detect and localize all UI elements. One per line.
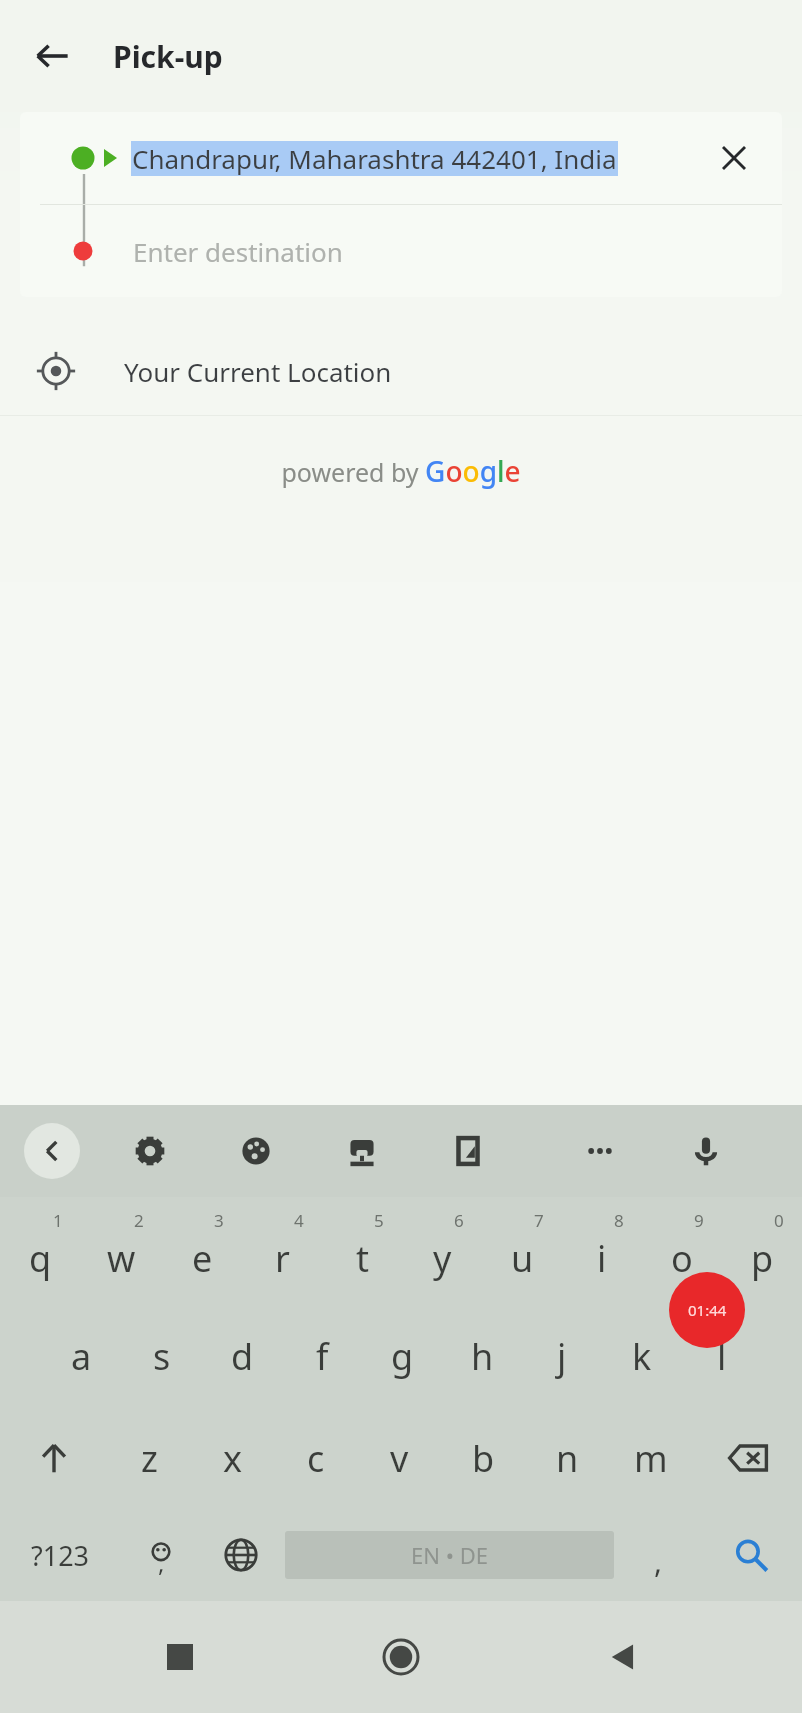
button[interactable]: w [81, 1203, 162, 1305]
button[interactable]: Your Current Location [0, 327, 802, 415]
button[interactable]: ?123 [0, 1509, 121, 1601]
button[interactable]: Theme [228, 1123, 284, 1179]
button[interactable]: k [602, 1305, 682, 1407]
button[interactable]: z [108, 1407, 191, 1509]
staticText: , [654, 1541, 663, 1582]
button[interactable]: Settings [122, 1123, 178, 1179]
button[interactable]: Clipboard [440, 1123, 496, 1179]
staticText: a [71, 1332, 92, 1381]
button[interactable]: s [122, 1305, 202, 1407]
button[interactable]: j [522, 1305, 602, 1407]
button[interactable]: Chandrapur, Maharashtra 442401, India [20, 112, 782, 204]
staticText: o [671, 1234, 693, 1283]
button[interactable]: p [722, 1203, 802, 1305]
staticText: w [107, 1234, 136, 1283]
button[interactable]: Enter destination [20, 205, 782, 297]
button[interactable]: i [562, 1203, 642, 1305]
staticText: d [231, 1332, 254, 1381]
button[interactable]: f [282, 1305, 362, 1407]
button[interactable]: h [442, 1305, 522, 1407]
button[interactable]: Stickers [334, 1123, 390, 1179]
button[interactable]: e [162, 1203, 242, 1305]
button[interactable]: Recents [138, 1615, 222, 1699]
button[interactable]: More options [572, 1123, 628, 1179]
staticText: 0 [774, 1209, 784, 1232]
button[interactable]: g [362, 1305, 442, 1407]
staticText: 6 [454, 1209, 464, 1232]
staticText: q [29, 1234, 52, 1283]
staticText: c [307, 1434, 325, 1483]
button[interactable]: Back [581, 1615, 665, 1699]
staticText: z [141, 1434, 158, 1483]
staticText: 7 [534, 1209, 544, 1232]
button[interactable]: r [242, 1203, 322, 1305]
button[interactable]: n [525, 1407, 609, 1509]
button[interactable]: x [191, 1407, 274, 1509]
button[interactable]: Emoji [121, 1509, 201, 1601]
staticText: j [557, 1332, 567, 1381]
button[interactable]: o [642, 1203, 722, 1305]
staticText: b [472, 1434, 495, 1483]
staticText: m [634, 1434, 668, 1483]
staticText: g [391, 1332, 414, 1381]
button[interactable]: Close toolbar [24, 1123, 80, 1179]
button[interactable]: Call timer [669, 1272, 745, 1348]
staticText: 5 [374, 1209, 384, 1232]
staticText: e [192, 1234, 213, 1283]
staticText: u [511, 1234, 534, 1283]
button[interactable]: Voice input [678, 1123, 734, 1179]
staticText: h [471, 1332, 494, 1381]
staticText: r [275, 1234, 290, 1283]
staticText: 01:44 [688, 1300, 727, 1320]
staticText: 9 [694, 1209, 704, 1232]
staticText: y [433, 1234, 452, 1283]
button[interactable]: d [202, 1305, 282, 1407]
staticText: i [597, 1234, 607, 1283]
button[interactable]: a [41, 1305, 122, 1407]
button[interactable]: , [618, 1509, 698, 1601]
staticText: Your Current Location [124, 354, 392, 389]
button[interactable]: Back [16, 20, 88, 92]
button[interactable]: Change language [201, 1509, 281, 1601]
button[interactable]: l [682, 1305, 762, 1407]
staticText: v [390, 1434, 409, 1483]
button[interactable]: b [441, 1407, 525, 1509]
staticText: 1 [53, 1209, 63, 1232]
staticText: Pick-up [113, 36, 223, 77]
staticText: 2 [134, 1209, 144, 1232]
button[interactable]: EN • DE [285, 1531, 614, 1579]
button[interactable]: Home [359, 1615, 443, 1699]
staticText: t [356, 1234, 369, 1283]
button[interactable]: u [482, 1203, 562, 1305]
staticText: Chandrapur, Maharashtra 442401, India [132, 141, 617, 176]
staticText: n [556, 1434, 579, 1483]
staticText: 8 [614, 1209, 624, 1232]
button[interactable]: q [0, 1203, 81, 1305]
button[interactable]: Search [698, 1509, 802, 1601]
button[interactable]: Shift [0, 1407, 108, 1509]
button[interactable]: y [402, 1203, 482, 1305]
button[interactable]: Backspace [693, 1407, 802, 1509]
button[interactable]: c [274, 1407, 357, 1509]
staticText: ?123 [31, 1537, 90, 1574]
button[interactable]: m [609, 1407, 693, 1509]
staticText: EN • DE [411, 1540, 488, 1570]
staticText: Enter destination [133, 234, 343, 269]
staticText: k [632, 1332, 652, 1381]
staticText: p [751, 1234, 774, 1283]
staticText: l [717, 1332, 727, 1381]
staticText: s [153, 1332, 171, 1381]
button[interactable]: v [357, 1407, 441, 1509]
staticText: powered by Google [281, 452, 521, 490]
button[interactable]: Clear [704, 128, 764, 188]
staticText: f [316, 1332, 329, 1381]
staticText: 4 [294, 1209, 304, 1232]
button[interactable]: t [322, 1203, 402, 1305]
staticText: 3 [214, 1209, 224, 1232]
staticText: x [223, 1434, 243, 1483]
staticText: , [158, 1546, 165, 1579]
